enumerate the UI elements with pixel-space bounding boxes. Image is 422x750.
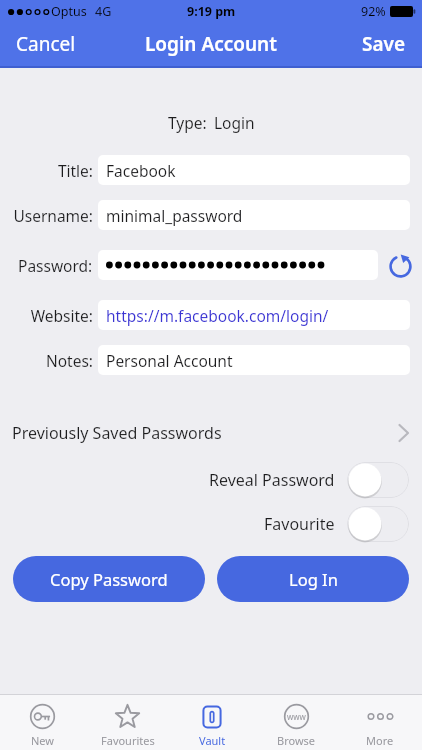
button[interactable]: www — [254, 697, 338, 748]
staticText: Username: — [13, 205, 93, 226]
staticText: Personal Account — [106, 350, 233, 371]
button[interactable]: Favourites — [85, 697, 170, 748]
staticText: 9:19 pm — [187, 3, 236, 20]
button[interactable]: Previously Saved Passwords — [0, 422, 422, 444]
staticText: 92% — [361, 3, 386, 20]
staticText: https://m.facebook.com/login/ — [106, 305, 329, 326]
button[interactable]: Generate password — [378, 245, 422, 285]
staticText: Optus — [51, 3, 87, 20]
staticText: Reveal Password — [209, 469, 335, 491]
staticText: More — [366, 733, 394, 748]
button[interactable]: Copy Password — [13, 556, 205, 602]
staticText: www — [287, 711, 306, 722]
button[interactable]: Cancel — [0, 23, 92, 65]
staticText: Favourite — [264, 513, 335, 535]
staticText: Login — [214, 112, 255, 133]
staticText: Facebook — [106, 160, 176, 181]
button[interactable]: https://m.facebook.com/login/ — [98, 300, 410, 330]
staticText: Vault — [199, 733, 226, 748]
staticText: Browse — [277, 733, 316, 748]
staticText: New — [31, 733, 54, 748]
staticText: Cancel — [16, 31, 76, 57]
staticText: Previously Saved Passwords — [12, 422, 222, 444]
staticText: minimal_password — [106, 205, 243, 226]
staticText: Favourites — [101, 733, 155, 748]
staticText: Copy Password — [50, 568, 168, 590]
staticText: Login Account — [145, 31, 277, 57]
button[interactable]: More — [338, 697, 422, 748]
button[interactable]: Favourite — [0, 506, 422, 542]
button[interactable]: Save — [346, 23, 422, 65]
button[interactable]: Reveal Password — [0, 462, 422, 498]
staticText: Title: — [57, 160, 93, 181]
button[interactable]: minimal_password — [98, 200, 410, 230]
staticText: Password: — [18, 255, 93, 276]
button[interactable]: Vault — [170, 698, 254, 748]
staticText: Log In — [289, 568, 338, 590]
button[interactable]: Facebook — [98, 155, 410, 185]
staticText: 4G — [95, 3, 112, 20]
staticText: Website: — [30, 305, 93, 326]
button[interactable]: Log In — [217, 556, 409, 602]
staticText: Notes: — [45, 350, 93, 371]
button[interactable]: Personal Account — [98, 345, 410, 375]
button[interactable]: New — [0, 697, 85, 748]
staticText: Type: — [168, 112, 207, 133]
staticText: Save — [362, 31, 406, 57]
button[interactable] — [98, 250, 378, 280]
